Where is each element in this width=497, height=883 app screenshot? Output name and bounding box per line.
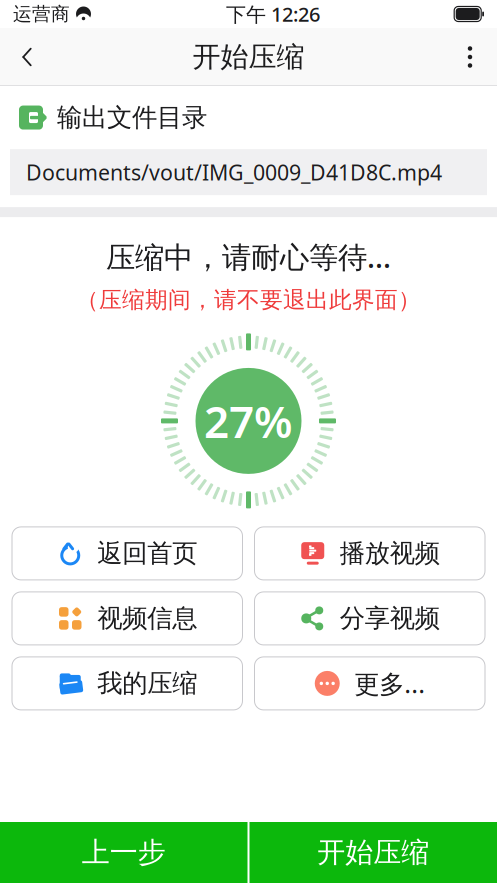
button[interactable]: 返回 — [0, 28, 54, 86]
staticText: 27% — [204, 392, 293, 450]
button[interactable]: 开始压缩 — [249, 822, 497, 883]
staticText: Documents/vout/IMG_0009_D41D8C.mp4 — [26, 158, 442, 186]
staticText: 上一步 — [82, 835, 166, 870]
button[interactable]: 我的压缩 — [12, 657, 242, 710]
button[interactable]: 分享视频 — [254, 592, 485, 645]
button[interactable]: 上一步 — [0, 822, 247, 883]
staticText: 分享视频 — [340, 603, 440, 634]
staticText: 返回首页 — [97, 538, 197, 569]
staticText: 运营商 — [13, 2, 70, 25]
button[interactable]: 更多选项 — [443, 28, 497, 86]
staticText: 播放视频 — [340, 538, 440, 569]
button[interactable]: 返回首页 — [12, 527, 242, 580]
staticText: 输出文件目录 — [57, 102, 207, 133]
staticText: 视频信息 — [97, 603, 197, 634]
staticText: 压缩中，请耐心等待... — [106, 237, 391, 276]
staticText: （压缩期间，请不要退出此界面） — [76, 286, 421, 314]
staticText: 下午 12:26 — [226, 1, 320, 27]
staticText: 开始压缩 — [317, 835, 429, 870]
staticText: 我的压缩 — [97, 668, 197, 699]
staticText: 开始压缩 — [192, 40, 304, 74]
button[interactable]: 视频信息 — [12, 592, 242, 645]
button[interactable]: 更多 — [254, 657, 485, 710]
staticText: 更多... — [354, 667, 425, 700]
button[interactable]: 播放视频 — [254, 527, 485, 580]
